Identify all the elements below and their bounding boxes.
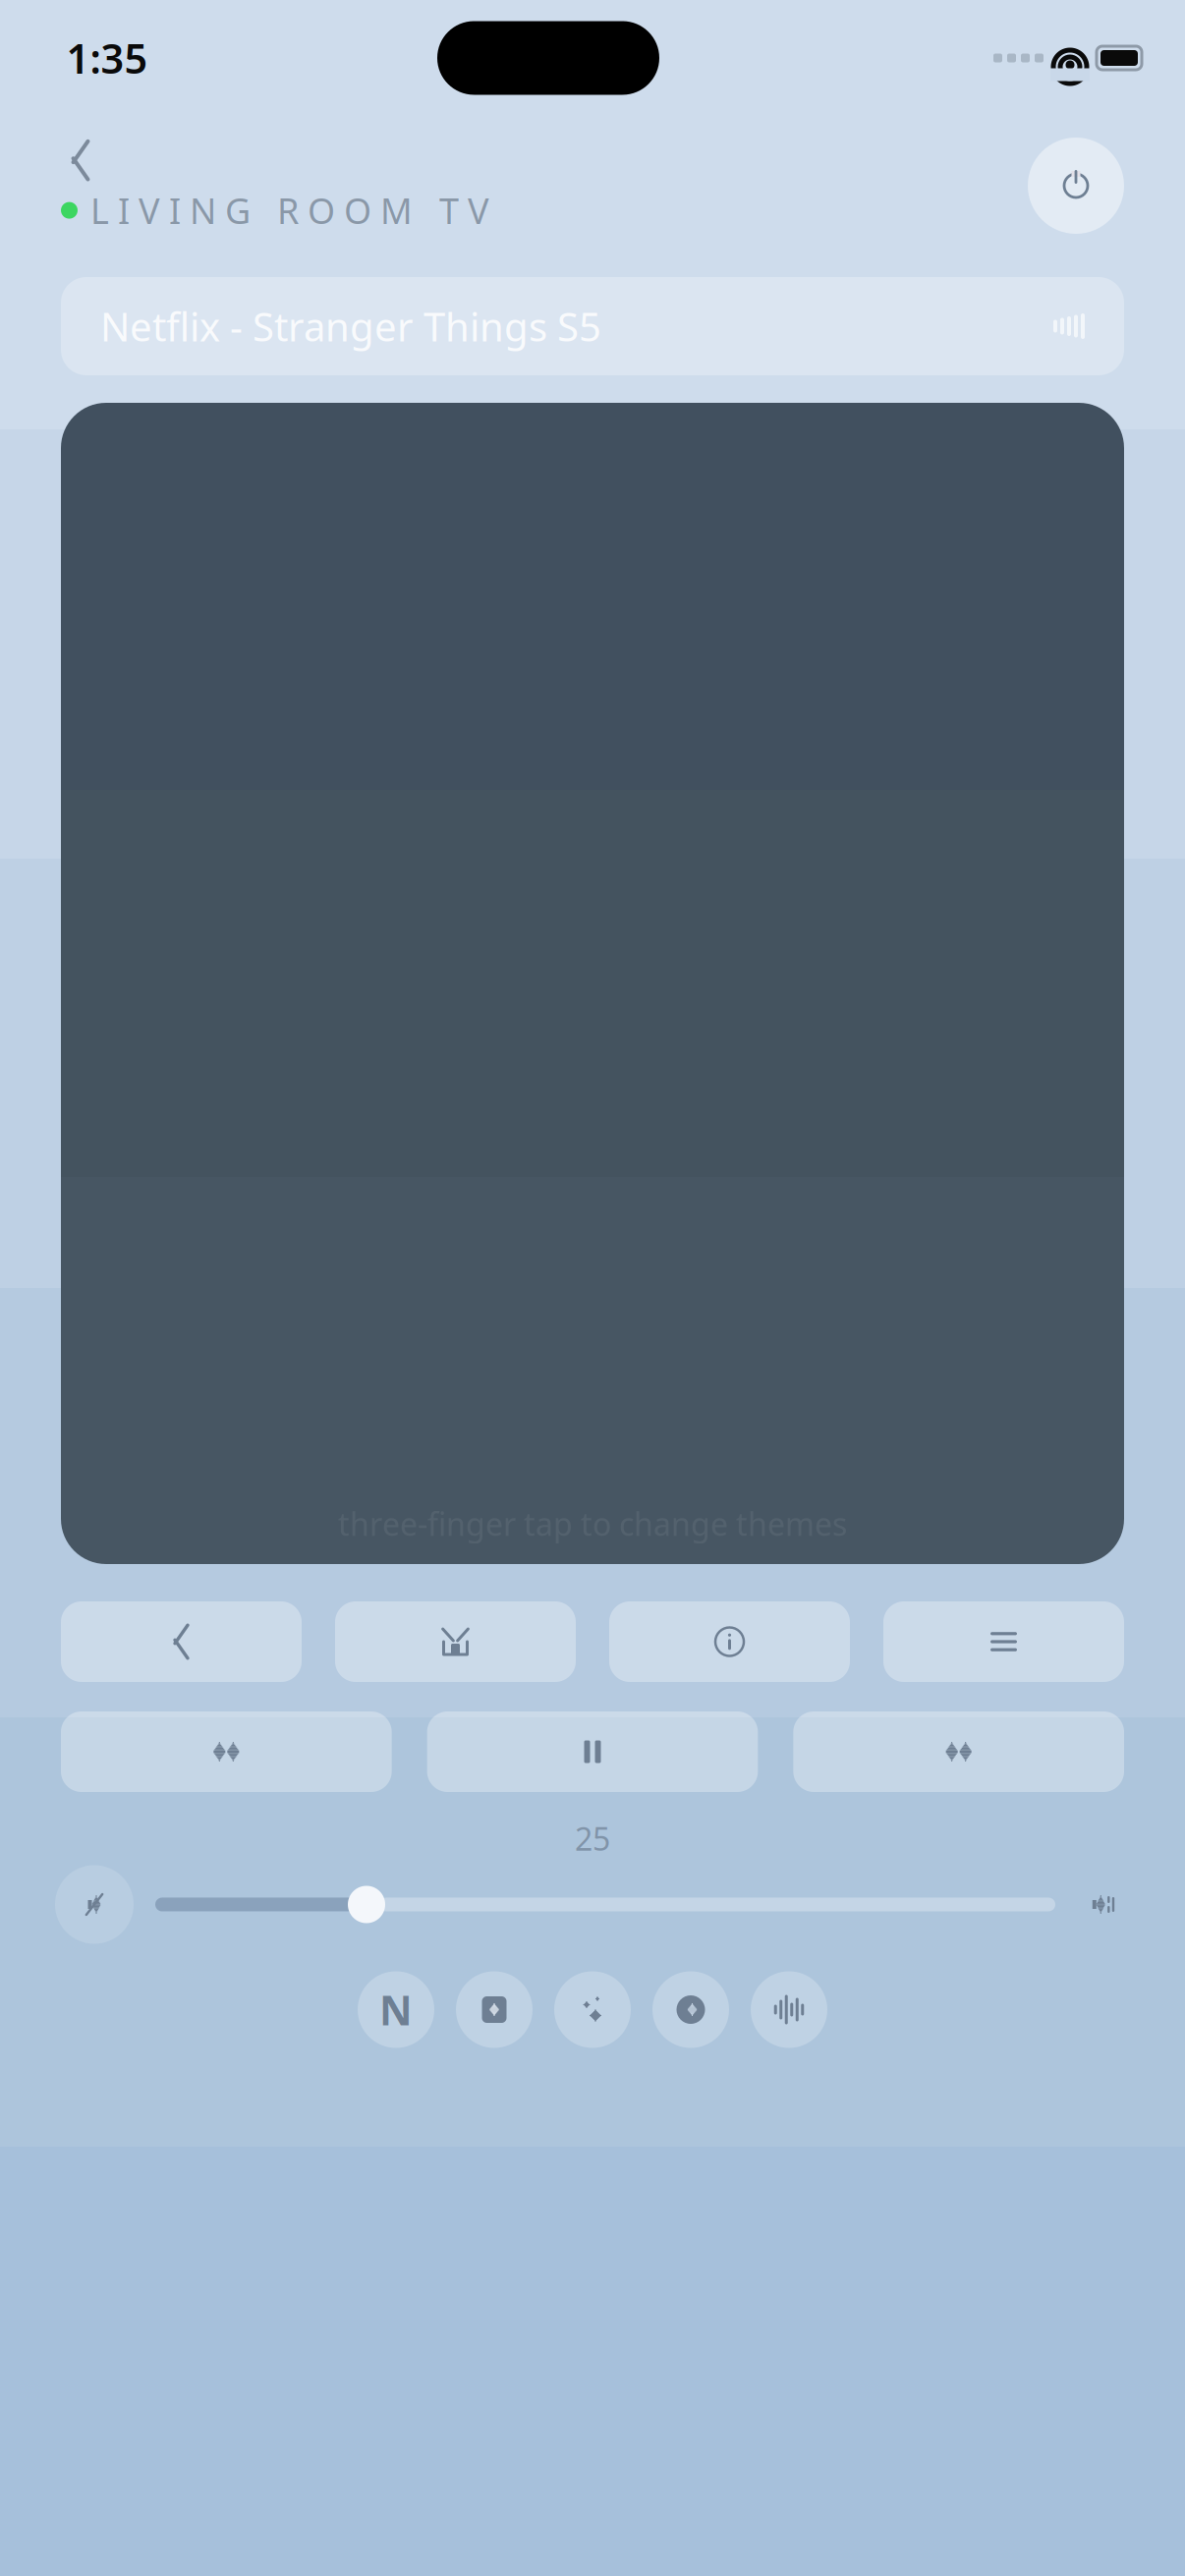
button[interactable]: Power (1028, 138, 1124, 234)
button[interactable]: Mute (55, 1865, 134, 1944)
button[interactable]: Music (751, 1971, 827, 2048)
button[interactable]: Back (61, 140, 100, 181)
staticText: 25 (575, 1818, 610, 1859)
staticText: Netflix - Stranger Things S5 (100, 300, 601, 352)
button[interactable]: Play (652, 1971, 729, 2048)
button[interactable]: Volume up (1077, 1878, 1130, 1931)
button[interactable]: Back (61, 1601, 302, 1682)
staticText: N (379, 1983, 413, 2037)
staticText: three-finger tap to change themes (338, 1503, 847, 1544)
button[interactable]: Netflix - Stranger Things S5 (61, 277, 1124, 375)
staticText: L I V I N G R O O M T V (90, 187, 489, 234)
button[interactable]: Fast forward (793, 1711, 1124, 1792)
button[interactable]: Home (335, 1601, 576, 1682)
button[interactable]: Menu (883, 1601, 1124, 1682)
staticText: 1:35 (66, 31, 148, 85)
button[interactable]: Rewind (61, 1711, 392, 1792)
button[interactable]: Apple TV+ (554, 1971, 631, 2048)
button[interactable]: three-finger tap to change themes (61, 403, 1124, 1564)
button[interactable]: Netflix (358, 1971, 434, 2048)
button[interactable]: Pause (427, 1711, 758, 1792)
button[interactable]: YouTube (456, 1971, 533, 2048)
button[interactable]: Info (609, 1601, 850, 1682)
